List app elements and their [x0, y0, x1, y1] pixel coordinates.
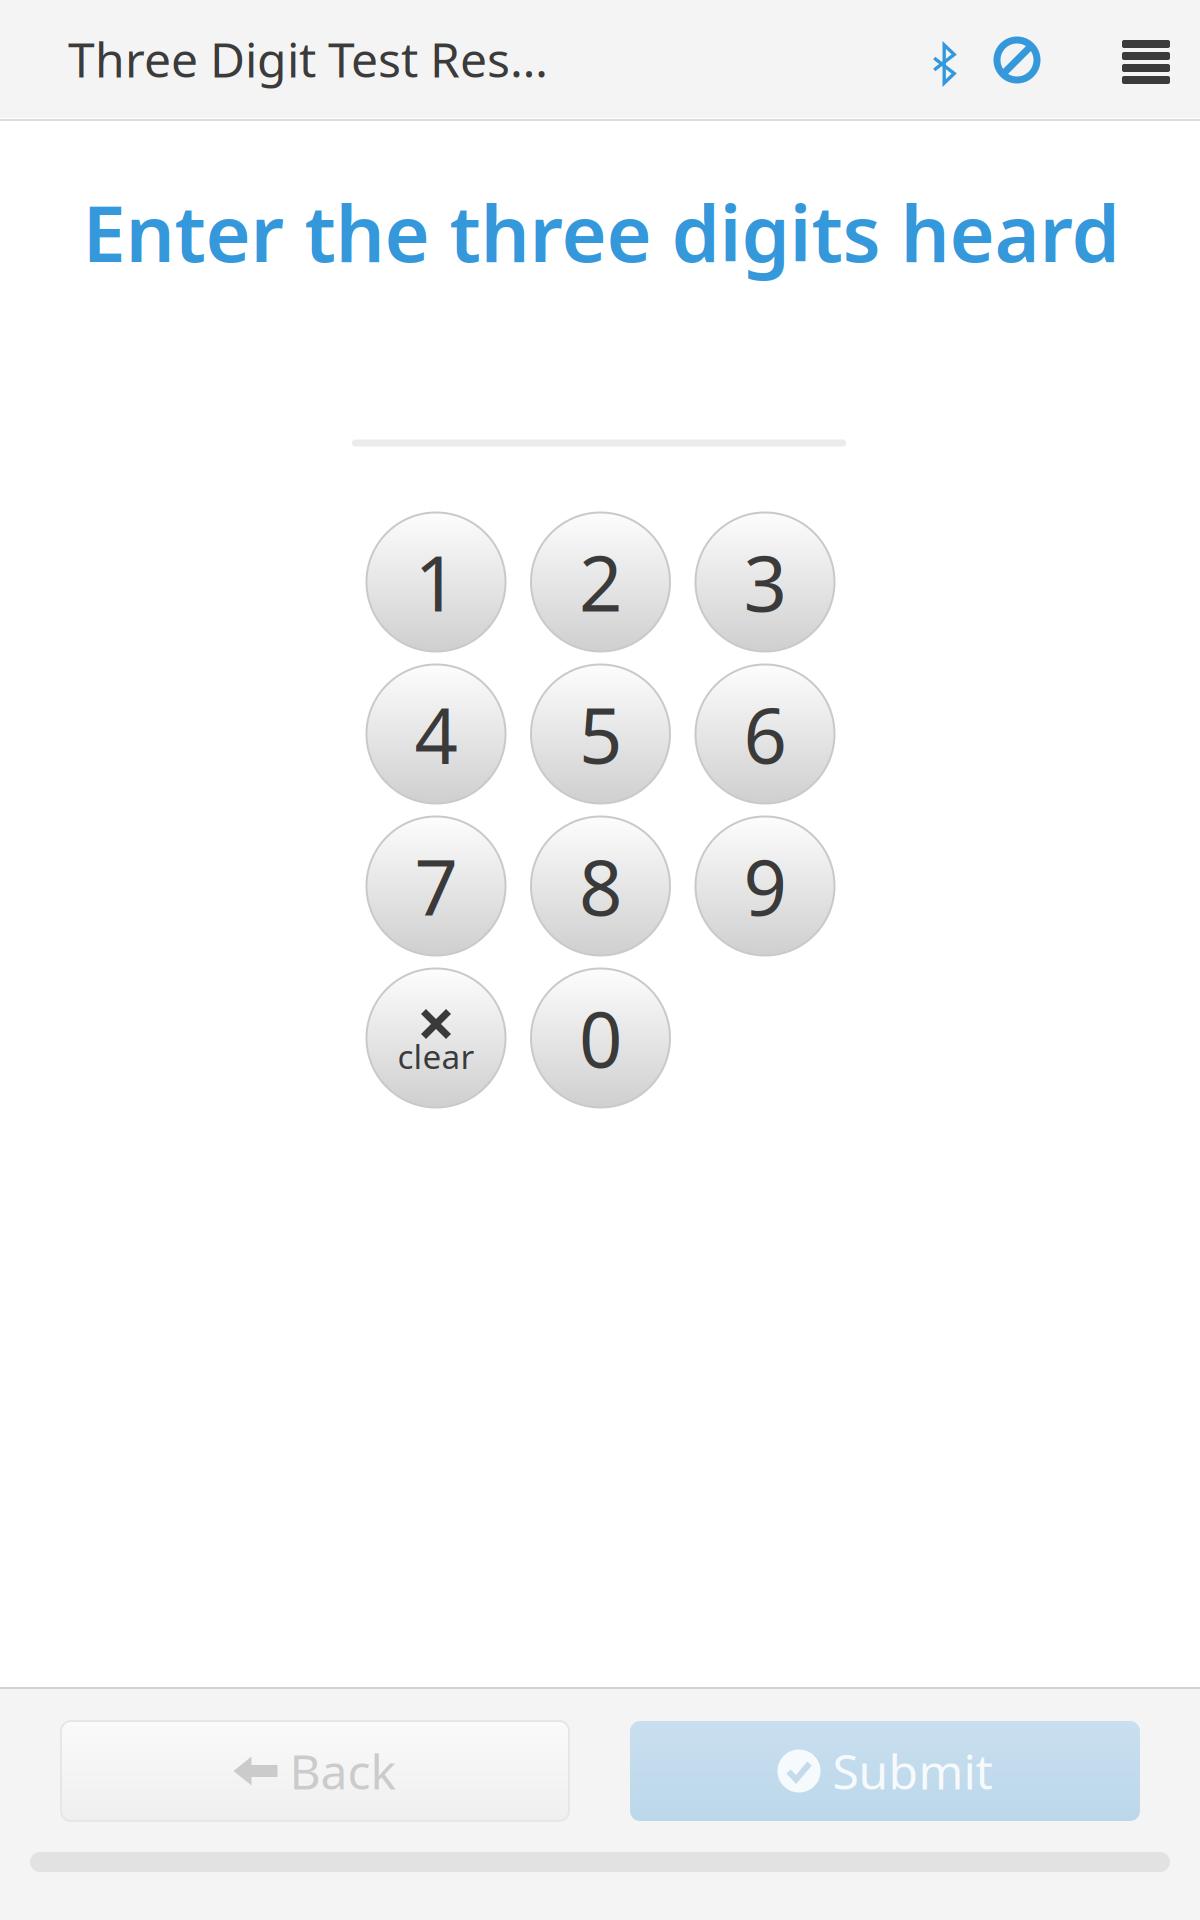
staticText: 5 — [579, 683, 622, 784]
staticText: 6 — [743, 683, 786, 784]
button[interactable]: 2 — [531, 512, 670, 651]
button[interactable]: 0 — [531, 968, 670, 1107]
staticText: 2 — [579, 531, 622, 632]
staticText: Enter the three digits heard — [82, 181, 1119, 283]
staticText: 8 — [579, 835, 622, 936]
button[interactable]: 1 — [366, 512, 505, 651]
button[interactable]: Menu — [1109, 31, 1183, 93]
button[interactable]: 5 — [531, 664, 670, 803]
button[interactable]: 3 — [695, 512, 834, 651]
button[interactable]: 4 — [366, 664, 505, 803]
staticText: 7 — [414, 835, 457, 936]
button[interactable]: Submit — [630, 1721, 1140, 1821]
staticText: 4 — [414, 683, 457, 784]
button[interactable]: Clear — [366, 968, 505, 1107]
button[interactable]: 8 — [531, 816, 670, 955]
staticText: 0 — [579, 987, 622, 1088]
button[interactable]: Back — [61, 1721, 569, 1821]
staticText: 3 — [743, 531, 786, 632]
staticText: 9 — [743, 835, 786, 936]
button[interactable]: 9 — [695, 816, 834, 955]
staticText: 1 — [414, 531, 457, 632]
staticText: Three Digit Test Res… — [68, 27, 548, 91]
button[interactable]: 7 — [366, 816, 505, 955]
button[interactable]: 6 — [695, 664, 834, 803]
staticText: Submit — [832, 1739, 992, 1803]
staticText: Back — [289, 1739, 396, 1803]
staticText: clear — [397, 1034, 474, 1078]
